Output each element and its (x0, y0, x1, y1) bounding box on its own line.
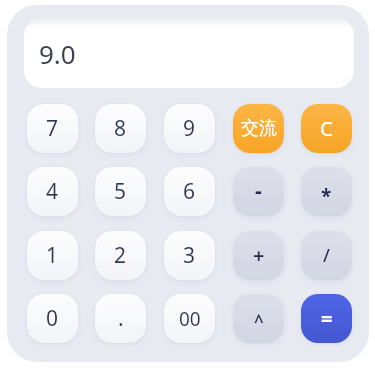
staticText: * (321, 183, 332, 209)
staticText: = (321, 305, 333, 332)
staticText: 4 (46, 177, 59, 206)
button[interactable]: 交流 (233, 104, 284, 153)
staticText: 0 (46, 304, 59, 333)
staticText: 交流 (241, 117, 277, 140)
staticText: 7 (46, 114, 59, 143)
staticText: 2 (114, 241, 127, 270)
button[interactable]: 0 (27, 294, 78, 343)
button[interactable]: 9.0 (24, 18, 354, 88)
button[interactable]: 8 (95, 104, 146, 153)
staticText: . (118, 304, 124, 333)
staticText: - (255, 176, 262, 205)
staticText: ^ (254, 310, 264, 333)
staticText: 1 (46, 241, 59, 270)
staticText: 6 (183, 177, 196, 206)
staticText: 9.0 (39, 36, 76, 71)
button[interactable]: 3 (164, 231, 215, 280)
staticText: 5 (114, 177, 127, 206)
button[interactable]: / (301, 231, 352, 280)
button[interactable]: C (301, 104, 352, 153)
button[interactable]: 2 (95, 231, 146, 280)
staticText: 9 (183, 114, 196, 143)
staticText: / (323, 243, 330, 268)
button[interactable]: 5 (95, 167, 146, 216)
staticText: 8 (114, 114, 127, 143)
button[interactable]: 00 (164, 294, 215, 343)
staticText: 00 (179, 306, 201, 332)
staticText: + (253, 242, 265, 269)
button[interactable]: 6 (164, 167, 215, 216)
button[interactable]: 9 (164, 104, 215, 153)
button[interactable]: 7 (27, 104, 78, 153)
button[interactable]: + (233, 231, 284, 280)
button[interactable]: * (301, 167, 352, 216)
button[interactable]: 4 (27, 167, 78, 216)
button[interactable]: 1 (27, 231, 78, 280)
button[interactable]: = (301, 294, 352, 343)
button[interactable]: - (233, 167, 284, 216)
button[interactable]: ^ (233, 294, 284, 343)
staticText: 3 (183, 241, 196, 270)
staticText: C (320, 115, 333, 142)
button[interactable]: . (95, 294, 146, 343)
